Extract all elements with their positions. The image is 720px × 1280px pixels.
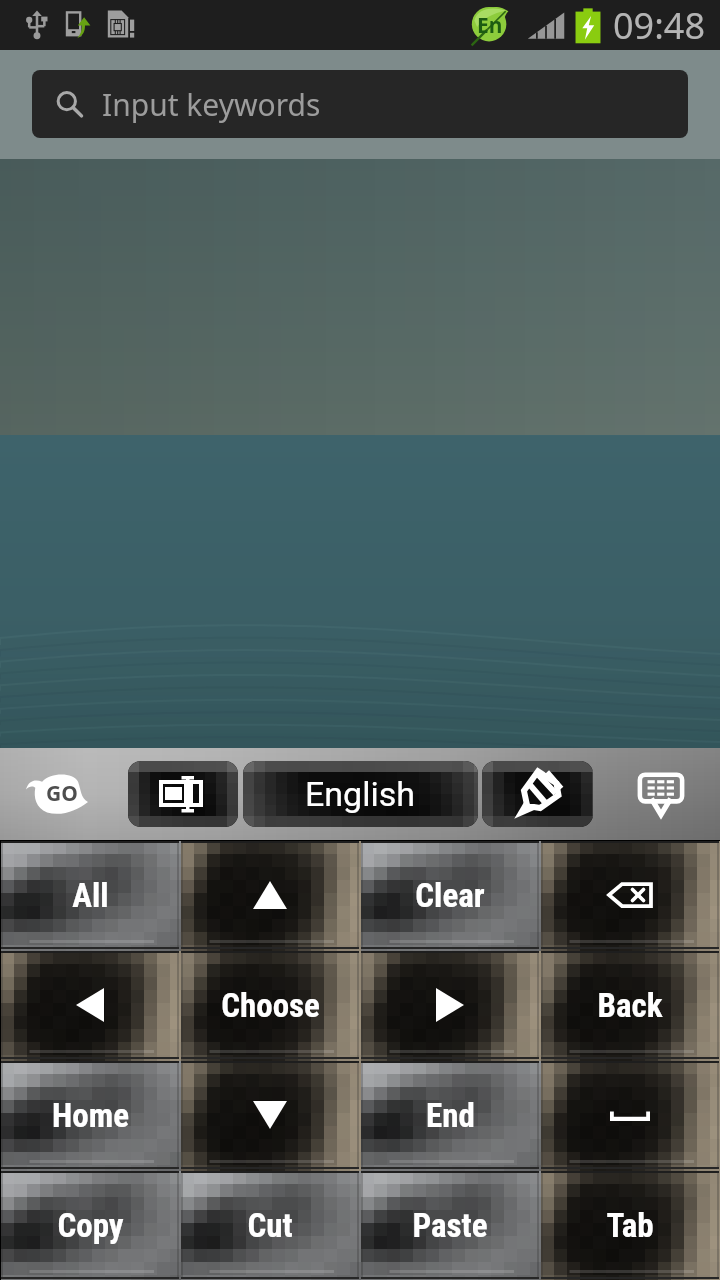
- staticText: Home: [52, 1096, 129, 1135]
- button[interactable]: English: [243, 761, 478, 827]
- staticText: Back: [597, 986, 663, 1025]
- button[interactable]: Copy: [1, 1171, 179, 1279]
- staticText: Clear: [415, 876, 485, 915]
- button[interactable]: Cut: [181, 1171, 359, 1279]
- button[interactable]: All: [1, 841, 179, 949]
- button[interactable]: End: [361, 1061, 539, 1169]
- button[interactable]: Home: [1, 1061, 179, 1169]
- button[interactable]: Left: [1, 951, 179, 1059]
- button[interactable]: Hide keyboard: [637, 771, 685, 817]
- staticText: Input keywords: [102, 84, 321, 125]
- staticText: End: [426, 1096, 475, 1135]
- button[interactable]: Tab: [541, 1171, 719, 1279]
- button[interactable]: Up: [181, 841, 359, 949]
- staticText: Copy: [57, 1206, 124, 1245]
- button[interactable]: Choose: [181, 951, 359, 1059]
- button[interactable]: Right: [361, 951, 539, 1059]
- button[interactable]: Paste: [361, 1171, 539, 1279]
- button[interactable]: Space: [541, 1061, 719, 1169]
- button[interactable]: Down: [181, 1061, 359, 1169]
- staticText: Cut: [247, 1206, 293, 1245]
- staticText: GO: [46, 779, 78, 808]
- button[interactable]: GO Keyboard menu: [26, 772, 88, 816]
- staticText: 09:48: [613, 1, 706, 50]
- button[interactable]: Clear: [361, 841, 539, 949]
- staticText: Tab: [606, 1206, 654, 1245]
- button[interactable]: Back: [541, 951, 719, 1059]
- staticText: En: [477, 11, 503, 40]
- staticText: All: [72, 876, 109, 915]
- button[interactable]: Keyboard layout: [128, 761, 238, 827]
- staticText: Paste: [412, 1206, 488, 1245]
- button[interactable]: Handwriting: [482, 761, 593, 827]
- staticText: English: [305, 774, 416, 814]
- button[interactable]: Backspace: [541, 841, 719, 949]
- button[interactable]: Input keywords: [32, 70, 688, 138]
- staticText: Choose: [221, 986, 320, 1025]
